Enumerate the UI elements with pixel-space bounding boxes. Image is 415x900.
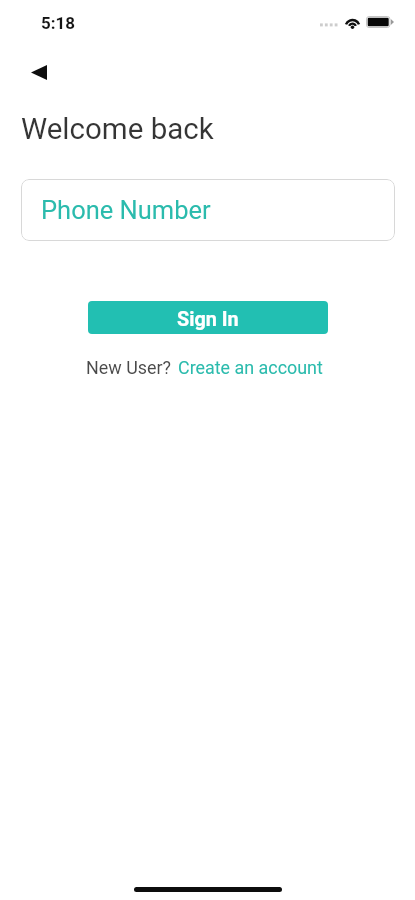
staticText: Phone Number — [41, 195, 211, 225]
staticText: 5:18 — [41, 13, 76, 33]
button[interactable]: Back — [19, 54, 59, 90]
button[interactable]: Sign In — [88, 301, 328, 334]
staticText: Create an account — [178, 357, 323, 378]
other: Wi-Fi — [344, 16, 361, 29]
staticText: New User? — [86, 357, 171, 378]
staticText: Sign In — [177, 308, 239, 331]
staticText: Welcome back — [21, 112, 214, 147]
button[interactable]: Phone Number — [21, 179, 395, 241]
other: Battery — [366, 16, 394, 28]
button[interactable]: Create an account — [178, 357, 323, 378]
